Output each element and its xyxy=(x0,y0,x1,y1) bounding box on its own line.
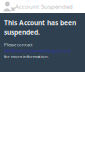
button[interactable]: 24x7@mountainviewdesigns.com xyxy=(4,48,71,53)
staticText: for more information. xyxy=(4,53,49,59)
staticText: Please contact xyxy=(4,42,33,48)
staticText: Account Suspended xyxy=(15,2,73,11)
staticText: 24x7@mountainviewdesigns.com xyxy=(4,48,71,53)
staticText: This Account has been suspended. xyxy=(4,18,76,37)
